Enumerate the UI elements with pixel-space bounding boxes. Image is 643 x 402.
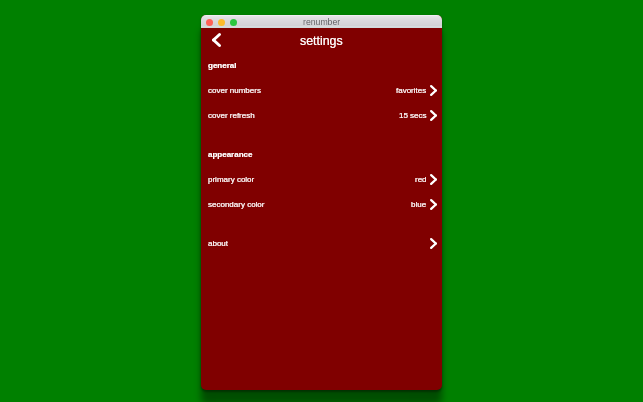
button[interactable]: cover numbers <box>201 78 442 103</box>
staticText: settings <box>300 34 343 48</box>
button[interactable]: Back <box>212 27 232 52</box>
button[interactable]: about <box>201 231 442 256</box>
staticText: primary color <box>208 175 255 184</box>
staticText: cover numbers <box>208 86 261 95</box>
staticText: blue <box>411 200 427 209</box>
button[interactable]: secondary color <box>201 192 442 217</box>
staticText: red <box>415 175 427 184</box>
staticText: favorites <box>396 86 427 95</box>
staticText: renumber <box>303 17 341 27</box>
staticText: secondary color <box>208 200 265 209</box>
button[interactable]: primary color <box>201 167 442 192</box>
staticText: general <box>208 61 237 70</box>
staticText: appearance <box>208 150 253 159</box>
staticText: cover refresh <box>208 111 255 120</box>
staticText: about <box>208 239 229 248</box>
staticText: 15 secs <box>399 111 427 120</box>
button[interactable]: cover refresh <box>201 103 442 128</box>
